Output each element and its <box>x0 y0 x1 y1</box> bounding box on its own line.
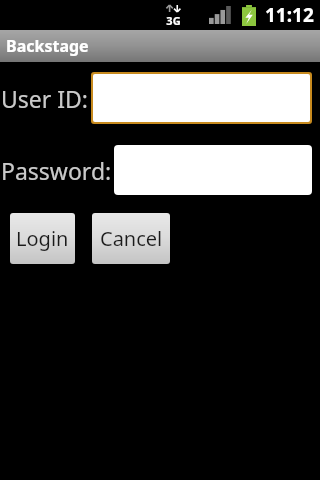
staticText: Cancel <box>100 225 163 252</box>
button[interactable]: Login <box>10 213 75 264</box>
staticText: 3G <box>165 13 182 28</box>
staticText: Backstage <box>6 35 89 57</box>
button[interactable] <box>114 145 312 195</box>
staticText: 11:12 <box>265 2 314 28</box>
button[interactable]: Cancel <box>92 213 170 264</box>
staticText: User ID: <box>1 83 89 114</box>
button[interactable] <box>93 74 310 122</box>
staticText: Password: <box>1 155 112 186</box>
staticText: Login <box>16 225 69 252</box>
